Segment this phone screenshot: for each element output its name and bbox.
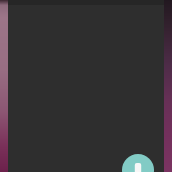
button[interactable]: Add	[122, 154, 154, 172]
